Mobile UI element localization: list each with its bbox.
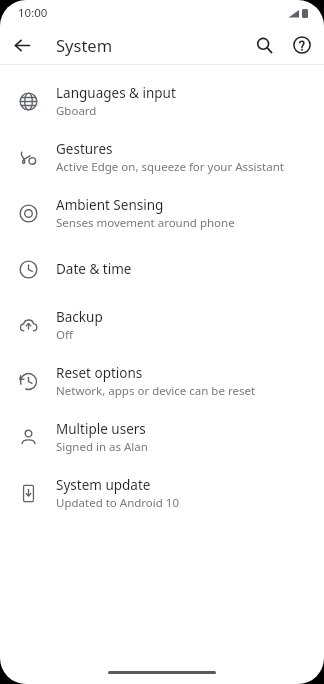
button[interactable]: Reset options: [0, 353, 324, 409]
button[interactable]: Search: [248, 29, 280, 61]
staticText: System: [56, 34, 113, 56]
staticText: Network, apps or device can be reset: [56, 383, 256, 399]
staticText: 10:00: [18, 5, 48, 21]
button[interactable]: Backup: [0, 297, 324, 353]
staticText: Backup: [56, 308, 103, 326]
button[interactable]: Languages & input: [0, 73, 324, 129]
button[interactable]: Ambient Sensing: [0, 185, 324, 241]
staticText: Active Edge on, squeeze for your Assista…: [56, 159, 284, 175]
button[interactable]: System update: [0, 465, 324, 521]
staticText: System update: [56, 476, 151, 494]
button[interactable]: Help: [286, 29, 318, 61]
staticText: Updated to Android 10: [56, 495, 179, 511]
staticText: Date & time: [56, 260, 132, 278]
staticText: Signed in as Alan: [56, 439, 148, 455]
button[interactable]: Date & time: [0, 241, 324, 297]
staticText: Off: [56, 327, 73, 343]
button[interactable]: Multiple users: [0, 409, 324, 465]
staticText: Reset options: [56, 364, 143, 382]
staticText: Ambient Sensing: [56, 196, 164, 214]
staticText: Gboard: [56, 103, 97, 119]
button[interactable]: Back: [8, 31, 36, 59]
staticText: Gestures: [56, 140, 113, 158]
staticText: Languages & input: [56, 84, 176, 102]
button[interactable]: Gestures: [0, 129, 324, 185]
staticText: Multiple users: [56, 420, 146, 438]
staticText: Senses movement around phone: [56, 215, 235, 231]
